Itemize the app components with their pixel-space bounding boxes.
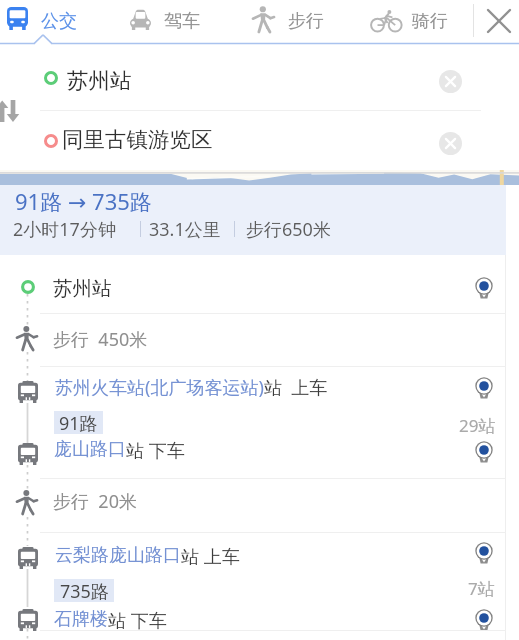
button[interactable]	[0, 367, 506, 437]
button[interactable]	[366, 0, 470, 42]
button[interactable]: Show on map	[473, 275, 495, 303]
button[interactable]	[40, 46, 506, 110]
staticText: 91路	[59, 411, 98, 434]
staticText: 735路	[60, 579, 109, 602]
staticText: 苏州火车站(北广场客运站)	[55, 375, 264, 400]
button[interactable]	[0, 437, 506, 477]
button[interactable]: Show on map	[473, 607, 495, 635]
button[interactable]: Show on map	[473, 375, 495, 403]
staticText: 步行	[288, 10, 324, 33]
button[interactable]	[0, 602, 506, 640]
staticText: 骑行	[412, 10, 448, 33]
staticText: 91路 → 735路	[15, 186, 152, 216]
button[interactable]: Show on map	[473, 439, 495, 467]
button[interactable]	[242, 0, 364, 42]
staticText: 同里古镇游览区	[62, 126, 213, 153]
button[interactable]: Close	[478, 0, 519, 42]
button[interactable]	[40, 111, 506, 170]
staticText: 苏州站	[53, 276, 112, 301]
button[interactable]	[0, 256, 506, 312]
staticText: 步行 450米	[53, 327, 148, 352]
button[interactable]: Clear	[437, 68, 463, 94]
staticText: 站 下车	[108, 608, 167, 633]
staticText: 站 上车	[181, 544, 240, 569]
staticText: 苏州站	[67, 67, 132, 94]
staticText: 公交	[41, 10, 77, 33]
staticText: 庞山路口	[54, 438, 126, 461]
button[interactable]	[0, 0, 118, 42]
button[interactable]: 91路	[54, 411, 103, 434]
staticText: 步行650米	[246, 217, 331, 242]
staticText: 驾车	[164, 10, 200, 33]
staticText: 云梨路庞山路口	[55, 544, 181, 567]
button[interactable]	[0, 532, 506, 602]
staticText: 站 上车	[264, 375, 328, 400]
button[interactable]: Swap origin and destination	[0, 94, 30, 128]
button[interactable]	[0, 185, 506, 255]
staticText: 站 下车	[126, 438, 185, 463]
staticText: 29站	[459, 414, 496, 437]
staticText: 7站	[468, 577, 495, 600]
button[interactable]	[0, 478, 506, 531]
button[interactable]	[120, 0, 240, 42]
staticText: 33.1公里	[149, 217, 221, 242]
staticText: 2小时17分钟	[13, 217, 116, 242]
staticText: 石牌楼	[54, 608, 108, 631]
button[interactable]: Clear	[437, 130, 463, 156]
staticText: 步行 20米	[53, 489, 137, 514]
button[interactable]: Show on map	[473, 540, 495, 568]
button[interactable]: 735路	[54, 579, 114, 602]
button[interactable]	[0, 313, 506, 366]
